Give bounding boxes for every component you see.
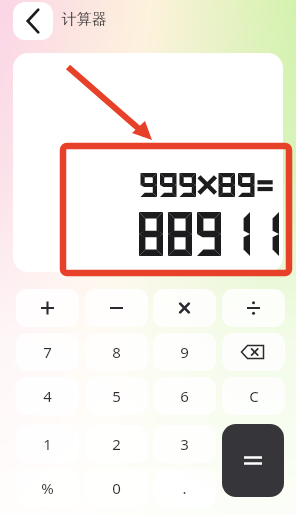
button[interactable]: Multiply [153,289,216,327]
staticText: 6 [180,386,189,406]
button[interactable]: . [153,469,216,507]
staticText: 计算器 [62,10,107,29]
staticText: % [41,478,54,498]
button[interactable]: 8 [85,333,148,371]
button[interactable]: Equals [222,424,284,497]
button[interactable]: 6 [153,377,216,415]
staticText: 4 [43,386,52,406]
staticText: 2 [112,434,121,454]
button[interactable]: Minus [85,289,148,327]
button[interactable]: C [222,377,285,415]
staticText: 1 [43,434,52,454]
staticText: . [182,478,187,498]
button[interactable]: 2 [85,425,148,463]
button[interactable]: 3 [153,425,216,463]
staticText: 9 [180,342,189,362]
staticText: 3 [180,434,189,454]
button[interactable]: Divide [222,289,285,327]
button[interactable]: % [16,469,79,507]
button[interactable]: 9 [153,333,216,371]
button[interactable]: Plus [16,289,79,327]
staticText: 0 [112,478,121,498]
button[interactable]: 7 [16,333,79,371]
button[interactable]: Backspace [222,333,285,371]
button[interactable]: Back [13,2,53,40]
staticText: C [249,386,259,406]
button[interactable]: 0 [85,469,148,507]
staticText: 5 [112,386,121,406]
button[interactable]: 4 [16,377,79,415]
button[interactable]: 5 [85,377,148,415]
staticText: 8 [112,342,121,362]
button[interactable]: 1 [16,425,79,463]
staticText: 7 [43,342,52,362]
